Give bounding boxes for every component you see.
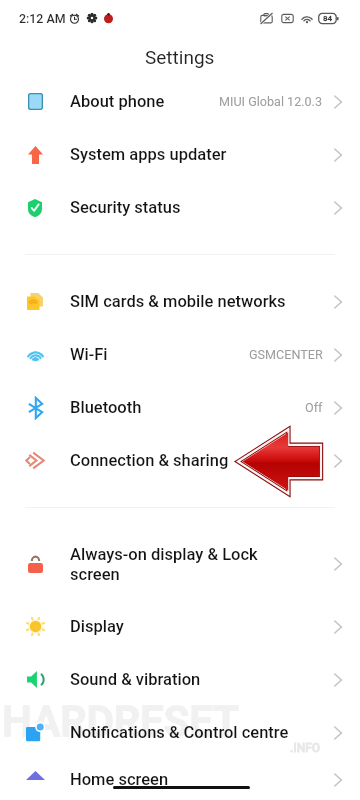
- button[interactable]: Notifications & Control centre: [0, 706, 360, 759]
- staticText: GSMCENTER: [249, 347, 323, 362]
- staticText: About phone: [70, 92, 219, 111]
- other: Pointer arrow: [235, 426, 324, 497]
- staticText: 2:12 AM: [19, 11, 66, 26]
- staticText: Wi-Fi: [70, 345, 249, 364]
- staticText: Settings: [145, 46, 215, 68]
- staticText: Sound & vibration: [70, 670, 334, 689]
- staticText: Display: [70, 617, 334, 636]
- button[interactable]: Always-on display & Lock screen: [0, 528, 360, 600]
- staticText: 84: [323, 14, 333, 23]
- staticText: SIM cards & mobile networks: [70, 292, 334, 311]
- staticText: Always-on display & Lock screen: [70, 545, 334, 584]
- button[interactable]: Bluetooth: [0, 381, 360, 434]
- staticText: Security status: [70, 198, 334, 217]
- staticText: MIUI Global 12.0.3: [219, 94, 323, 109]
- button[interactable]: Sound & vibration: [0, 653, 360, 706]
- button[interactable]: SIM cards & mobile networks: [0, 275, 360, 328]
- button[interactable]: System apps updater: [0, 128, 360, 181]
- staticText: Home screen: [70, 770, 334, 789]
- staticText: Off: [305, 400, 323, 415]
- button[interactable]: About phone: [0, 75, 360, 128]
- button[interactable]: Display: [0, 600, 360, 653]
- button[interactable]: Connection & sharing: [0, 434, 360, 487]
- staticText: System apps updater: [70, 145, 334, 164]
- staticText: Connection & sharing: [70, 451, 334, 470]
- button[interactable]: Wi-Fi: [0, 328, 360, 381]
- staticText: Bluetooth: [70, 398, 305, 417]
- staticText: Notifications & Control centre: [70, 723, 334, 742]
- button[interactable]: Home screen: [0, 759, 360, 800]
- button[interactable]: Security status: [0, 181, 360, 234]
- staticText: .INFO: [290, 741, 321, 755]
- staticText: HARDRESET: [2, 697, 239, 746]
